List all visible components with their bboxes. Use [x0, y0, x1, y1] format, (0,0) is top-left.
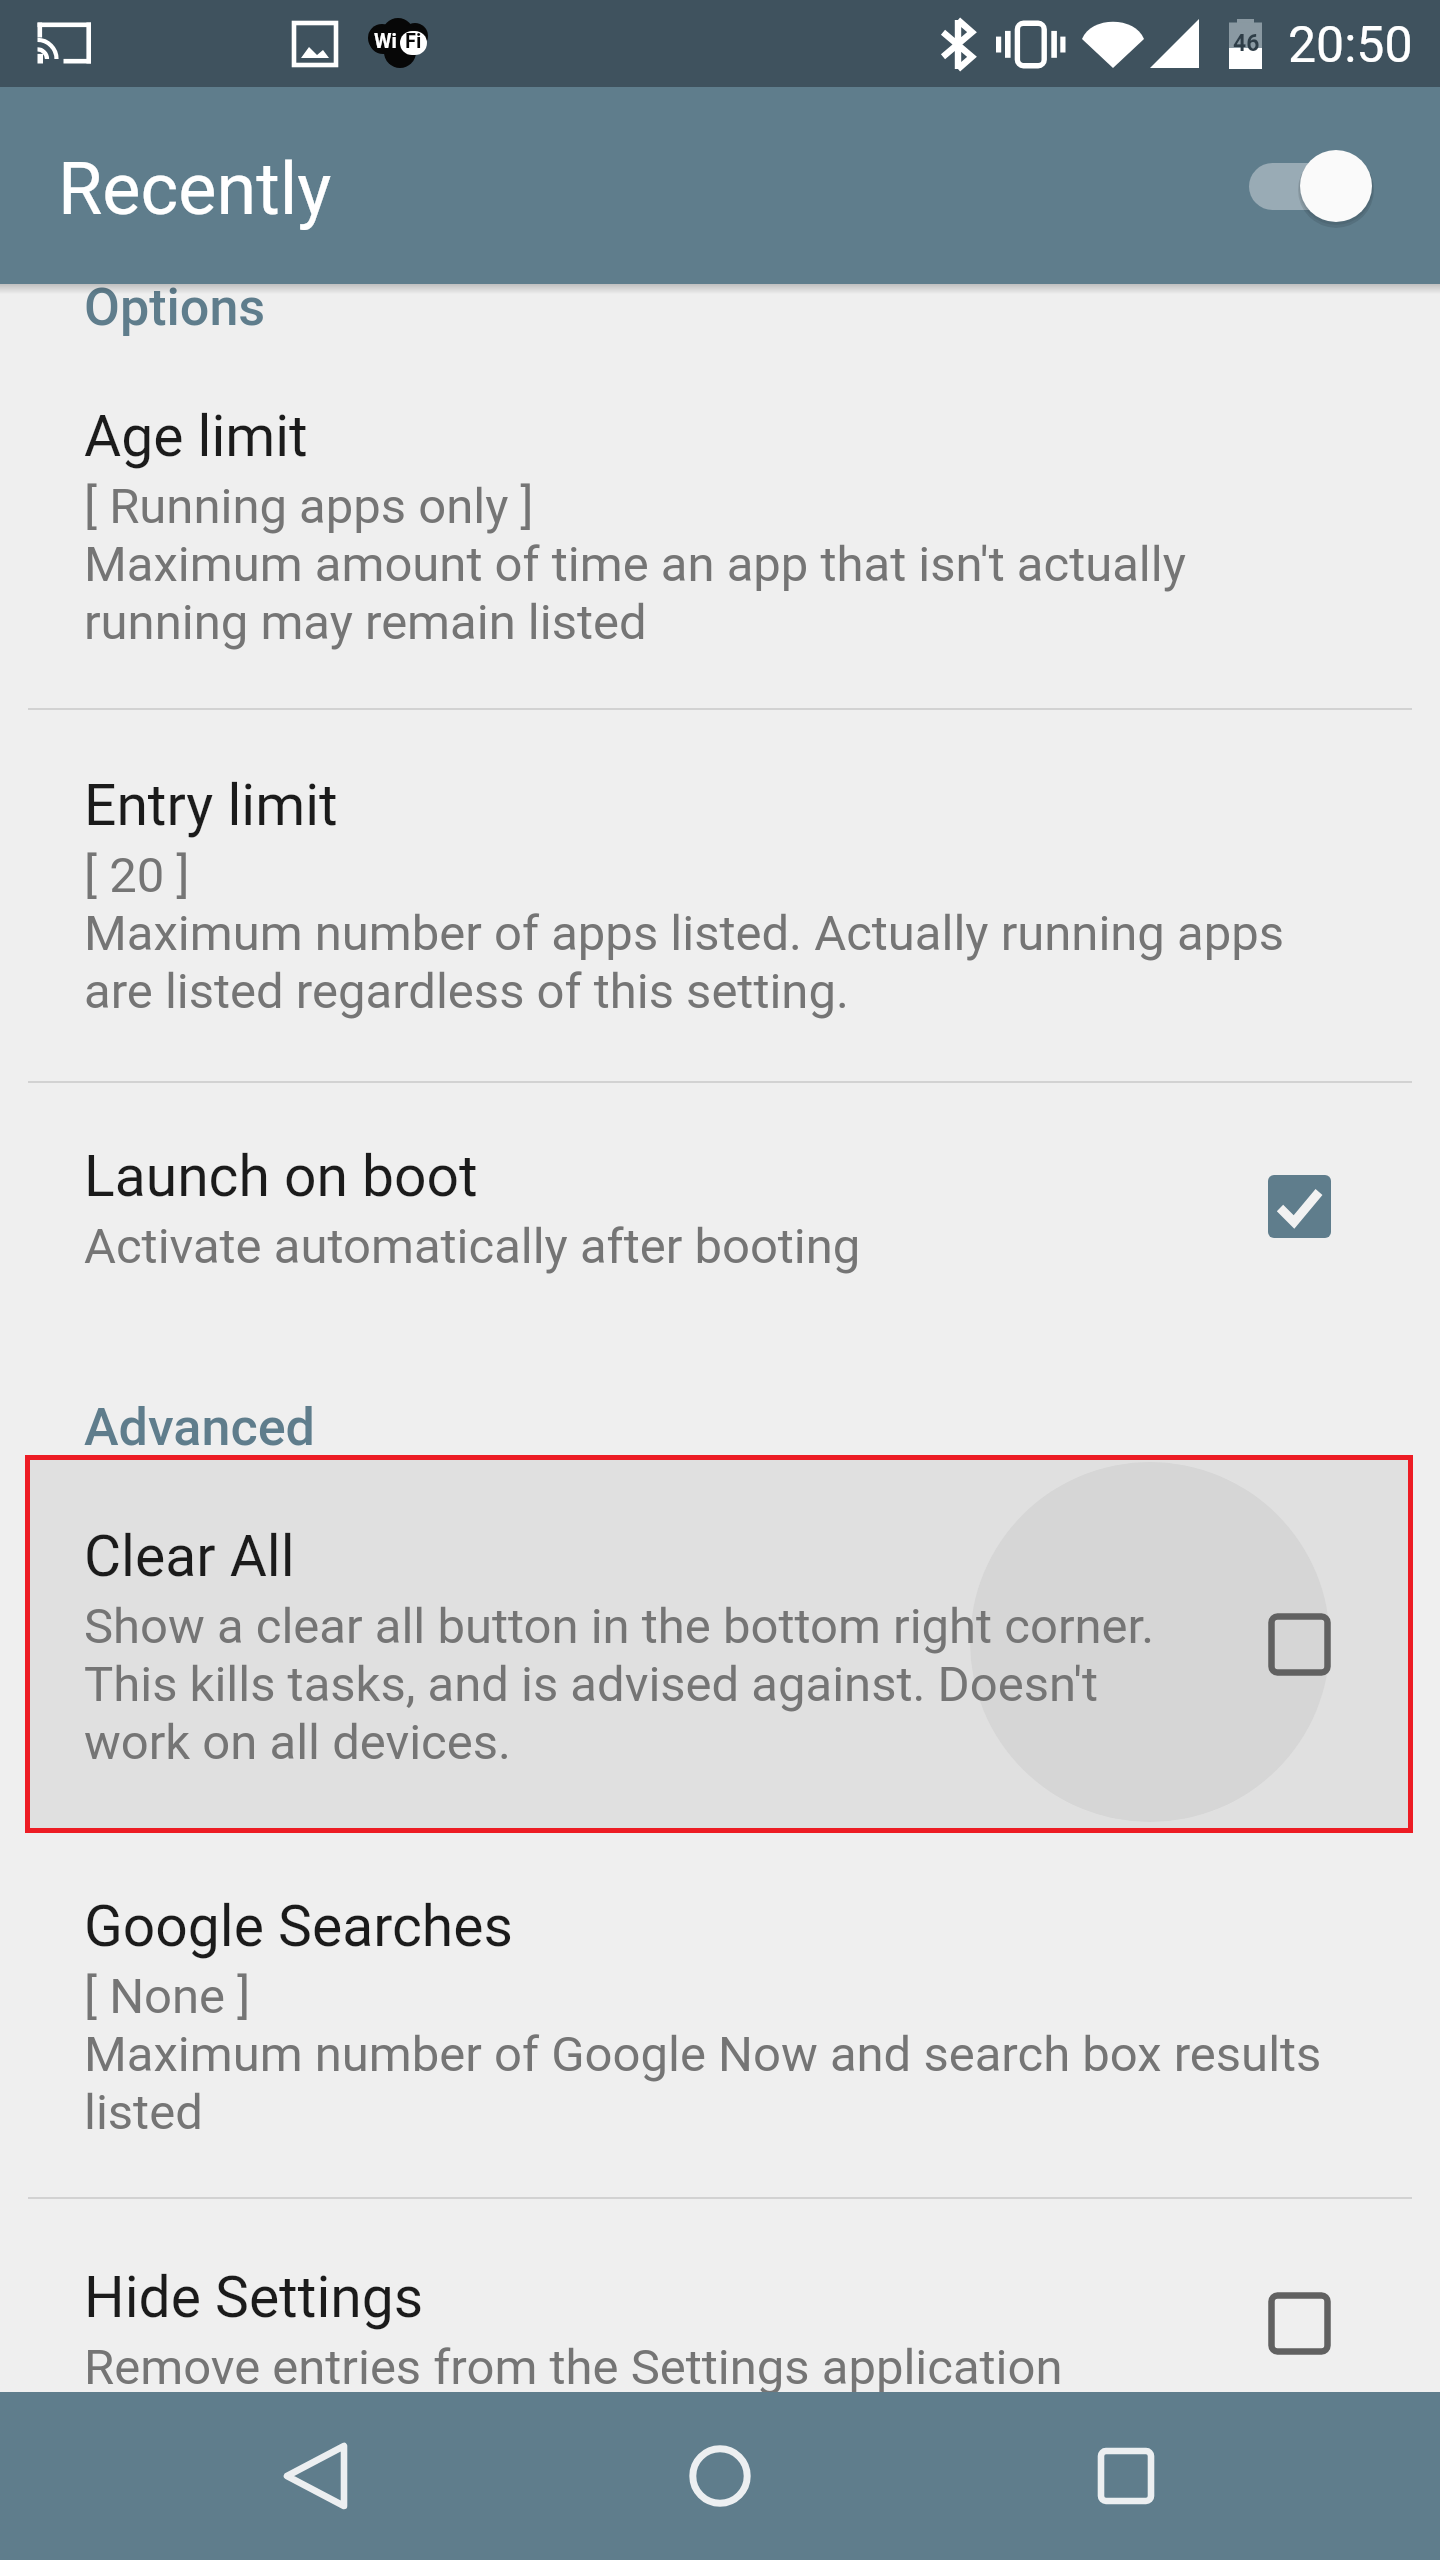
staticText: 46: [1233, 30, 1260, 57]
staticText: listed: [84, 2084, 203, 2141]
staticText: Maximum number of apps listed. Actually …: [84, 905, 1284, 962]
staticText: [ Running apps only ]: [84, 478, 534, 535]
staticText: Maximum number of Google Now and search …: [84, 2026, 1322, 2083]
button[interactable]: Back: [75, 2392, 555, 2560]
staticText: Maximum amount of time an app that isn't…: [84, 536, 1186, 593]
button[interactable]: Toggle service: [1222, 138, 1402, 234]
staticText: This kills tasks, and is advised against…: [84, 1656, 1099, 1713]
staticText: Launch on boot: [84, 1143, 478, 1210]
staticText: Show a clear all button in the bottom ri…: [84, 1598, 1155, 1655]
staticText: work on all devices.: [84, 1714, 511, 1771]
staticText: [ 20 ]: [84, 847, 190, 904]
staticText: running may remain listed: [84, 594, 647, 651]
staticText: Entry limit: [84, 772, 338, 839]
staticText: Remove entries from the Settings applica…: [84, 2339, 1063, 2396]
button[interactable]: Checkbox, unchecked: [1268, 1613, 1331, 1676]
button[interactable]: Checkbox, unchecked: [1268, 2292, 1331, 2355]
button[interactable]: [30, 1460, 1408, 1828]
button[interactable]: Launch on boot, checked: [1268, 1175, 1331, 1238]
staticText: 20:50: [1288, 16, 1413, 75]
staticText: Age limit: [84, 403, 308, 470]
staticText: Activate automatically after booting: [84, 1218, 861, 1275]
button[interactable]: Recent apps: [886, 2392, 1366, 2560]
staticText: [ None ]: [84, 1968, 251, 2025]
staticText: Fi: [405, 29, 422, 52]
staticText: Wi: [374, 29, 397, 52]
staticText: are listed regardless of this setting.: [84, 963, 849, 1020]
staticText: Hide Settings: [84, 2264, 424, 2331]
staticText: Options: [84, 277, 266, 338]
staticText: Advanced: [84, 1397, 315, 1458]
staticText: Google Searches: [84, 1893, 513, 1960]
staticText: Recently: [58, 147, 332, 231]
button[interactable]: Home: [480, 2392, 960, 2560]
staticText: Clear All: [84, 1523, 295, 1590]
